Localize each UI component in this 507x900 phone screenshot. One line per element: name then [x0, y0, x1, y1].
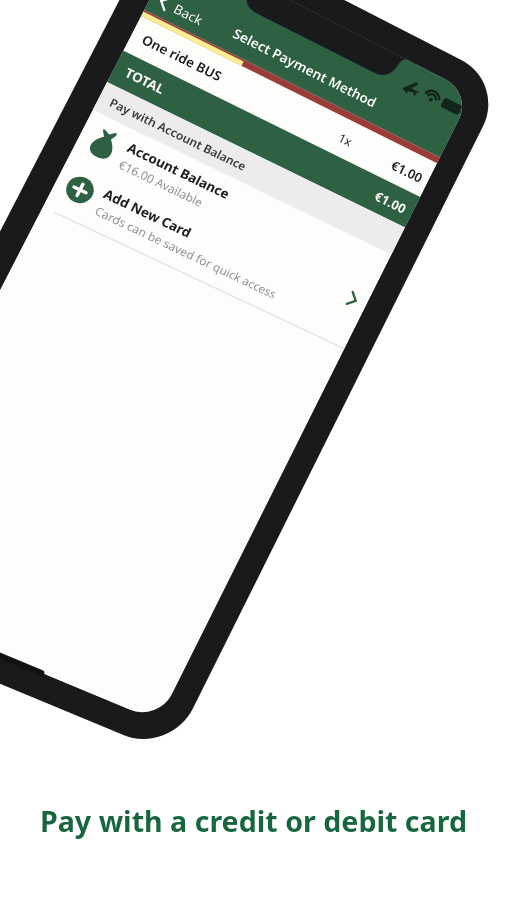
- staticText: Pay with a credit or debit card: [0, 801, 507, 840]
- button[interactable]: [120, 25, 340, 105]
- button[interactable]: [45, 165, 275, 255]
- button[interactable]: [150, 0, 240, 30]
- button[interactable]: [70, 110, 300, 190]
